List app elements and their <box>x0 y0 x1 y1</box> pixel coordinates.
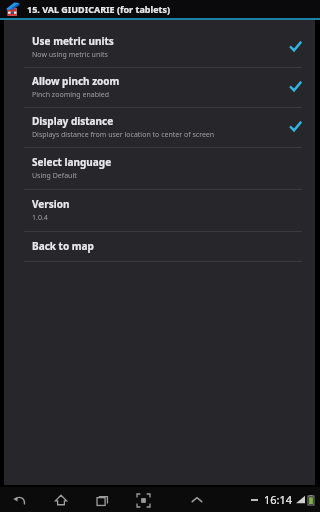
button[interactable]: Show notifications <box>185 488 209 512</box>
staticText: 1.0.4 <box>32 213 48 223</box>
staticText: Back to map <box>32 239 94 253</box>
staticText: Using Default <box>32 171 77 181</box>
staticText: Displays distance from user location to … <box>32 130 215 140</box>
button[interactable]: Back <box>8 488 32 512</box>
button[interactable]: Version <box>4 190 315 231</box>
button[interactable]: Display distance <box>4 108 315 147</box>
button[interactable]: Allow pinch zoom <box>4 68 315 107</box>
button[interactable]: Toggle setting <box>288 80 302 94</box>
staticText: Pinch zooming enabled <box>32 90 109 100</box>
staticText: Display distance <box>32 114 114 128</box>
staticText: Version <box>32 197 70 211</box>
button[interactable]: Back to map <box>4 232 315 261</box>
staticText: 16:14 <box>263 492 292 507</box>
staticText: Allow pinch zoom <box>32 74 120 88</box>
button[interactable]: Home <box>49 488 73 512</box>
staticText: Select language <box>32 155 112 169</box>
staticText: Now using metric units <box>32 50 108 60</box>
button[interactable]: Screenshot <box>131 488 155 512</box>
staticText: Use metric units <box>32 34 114 48</box>
button[interactable]: Toggle setting <box>288 120 302 134</box>
staticText: 15. VAL GIUDICARIE (for tablets) <box>27 3 170 15</box>
button[interactable]: Toggle setting <box>288 40 302 54</box>
button[interactable]: Select language <box>4 148 315 189</box>
button[interactable]: Recent apps <box>90 488 114 512</box>
button[interactable]: Use metric units <box>4 28 315 67</box>
